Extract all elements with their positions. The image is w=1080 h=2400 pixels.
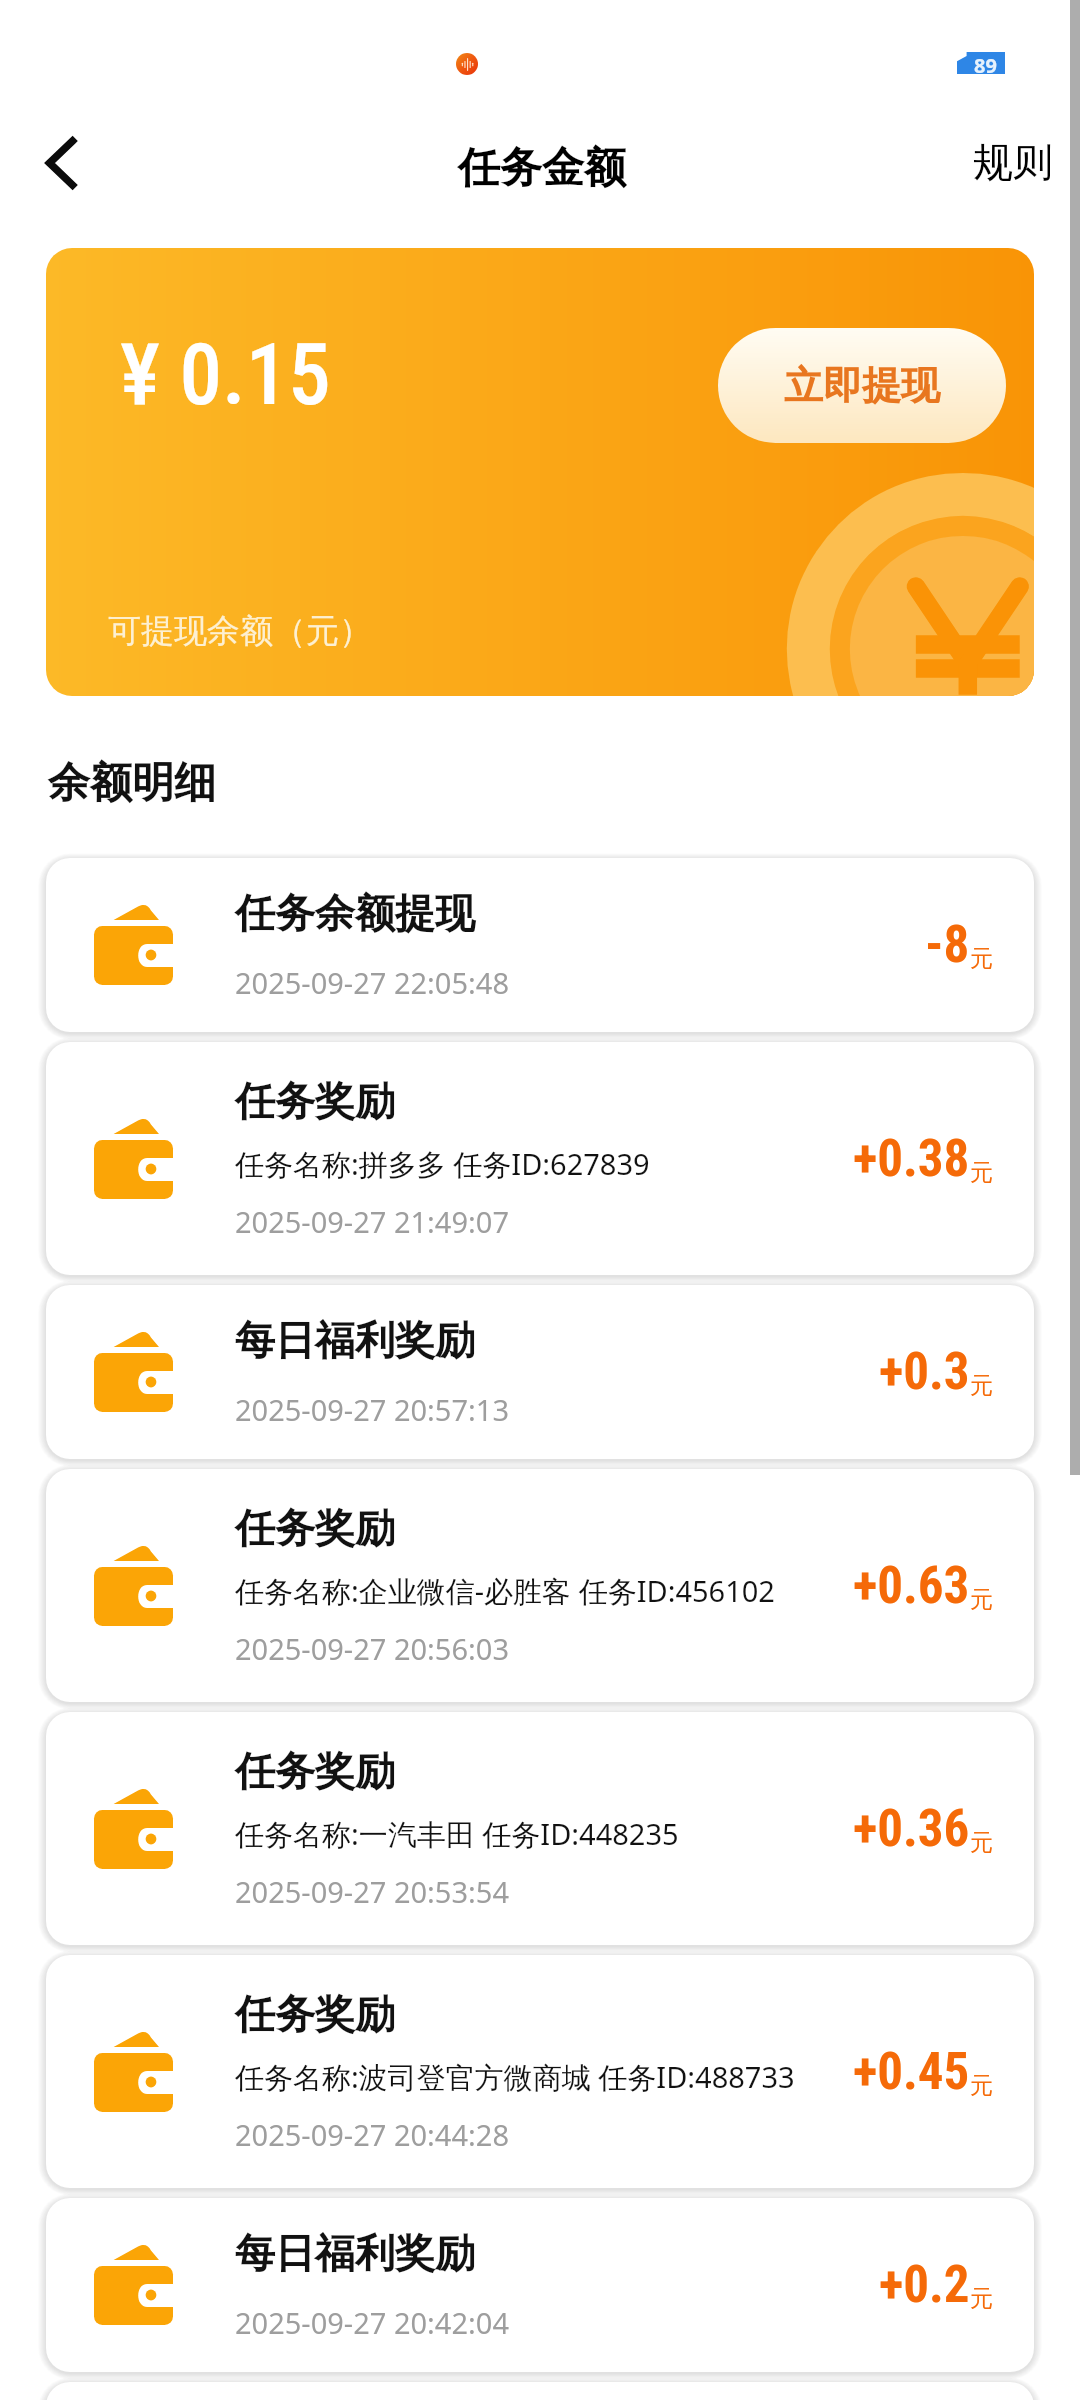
staticText: 余额明细	[48, 757, 216, 810]
staticText: 任务名称:拼多多 任务ID:627839	[235, 1144, 650, 1184]
staticText: 每日福利奖励	[235, 2228, 475, 2278]
staticText: 元	[970, 1158, 993, 1187]
staticText: 任务奖励	[235, 1989, 395, 2039]
staticText: +0.36	[853, 1799, 970, 1859]
staticText: 2025-09-27 20:42:04	[235, 2303, 509, 2342]
staticText: 2025-09-27 20:44:28	[235, 2115, 509, 2154]
staticText: 元	[970, 1828, 993, 1857]
staticText: 任务名称:企业微信-必胜客 任务ID:456102	[235, 1571, 775, 1611]
button[interactable]: 每日福利奖励	[46, 2198, 1034, 2372]
staticText: 可提现余额（元）	[108, 610, 372, 652]
staticText: +0.38	[853, 1129, 970, 1189]
button[interactable]: 任务奖励	[46, 1469, 1034, 1702]
staticText: 2025-09-27 22:05:48	[235, 963, 509, 1002]
staticText: 任务金额	[458, 142, 626, 195]
button[interactable]: 任务奖励	[46, 1955, 1034, 2188]
staticText: 元	[970, 944, 993, 973]
staticText: 任务名称:波司登官方微商城 任务ID:488733	[235, 2057, 795, 2097]
button[interactable]: 每日福利奖励	[46, 1285, 1034, 1459]
button[interactable]: 任务奖励	[46, 1042, 1034, 1275]
staticText: 元	[970, 1585, 993, 1614]
staticText: 每日福利奖励	[235, 1315, 475, 1365]
button[interactable]: 任务余额提现	[46, 858, 1034, 1032]
button[interactable]: Back	[6, 108, 116, 218]
staticText: +0.2	[879, 2255, 970, 2315]
staticText: 任务余额提现	[235, 888, 475, 938]
staticText: -8	[925, 915, 970, 975]
staticText: 任务奖励	[235, 1503, 395, 1553]
staticText: +0.45	[853, 2042, 970, 2102]
staticText: 任务奖励	[235, 1076, 395, 1126]
staticText: 89	[974, 52, 997, 74]
staticText: 元	[970, 2284, 993, 2313]
staticText: +0.63	[853, 1556, 970, 1616]
staticText: 任务名称:一汽丰田 任务ID:448235	[235, 1814, 679, 1854]
staticText: 规则	[973, 137, 1053, 187]
staticText: 立即提现	[784, 361, 940, 410]
staticText: 2025-09-27 20:53:54	[235, 1872, 509, 1911]
staticText: 任务奖励	[235, 1746, 395, 1796]
button[interactable]: 立即提现	[718, 328, 1006, 443]
staticText: 元	[970, 2071, 993, 2100]
staticText: +0.3	[879, 1342, 970, 1402]
button[interactable]: 规则	[950, 122, 1075, 202]
staticText: 2025-09-27 21:49:07	[235, 1202, 509, 1241]
staticText: 2025-09-27 20:57:13	[235, 1390, 509, 1429]
button[interactable]: 任务奖励	[46, 1712, 1034, 1945]
staticText: 元	[970, 1371, 993, 1400]
staticText: ¥ 0.15	[120, 325, 331, 425]
staticText: 2025-09-27 20:56:03	[235, 1629, 509, 1668]
